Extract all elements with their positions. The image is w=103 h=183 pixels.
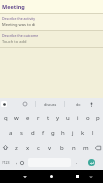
staticText: g (51, 129, 55, 137)
button[interactable]: Recent apps (69, 170, 85, 183)
button[interactable]: , (12, 155, 21, 170)
staticText: x (26, 144, 30, 152)
button[interactable]: c (33, 140, 44, 155)
button[interactable]: discuss (36, 98, 64, 110)
button[interactable]: a (5, 125, 16, 140)
button[interactable]: k (78, 125, 88, 140)
staticText: y (56, 114, 60, 122)
staticText: m (83, 144, 89, 152)
button[interactable]: Meeting (0, 0, 103, 13)
staticText: l (92, 129, 94, 137)
button[interactable]: Emoji (18, 155, 26, 170)
staticText: k (81, 129, 85, 137)
button[interactable]: Enter (83, 155, 100, 170)
staticText: Touch to add (2, 39, 27, 44)
staticText: b (60, 144, 64, 152)
button[interactable]: Backspace (92, 140, 103, 155)
button[interactable]: Describe the activity (0, 14, 103, 30)
staticText: u (66, 114, 70, 122)
staticText: j (72, 129, 74, 137)
button[interactable]: . (72, 155, 81, 170)
button[interactable]: w (11, 110, 22, 125)
button[interactable]: Hide keyboard (17, 170, 33, 183)
button[interactable]: Home (43, 170, 59, 183)
button[interactable]: i (73, 110, 83, 125)
staticText: d (31, 129, 35, 137)
button[interactable]: p (93, 110, 103, 125)
button[interactable]: q (0, 110, 11, 125)
button[interactable]: b (56, 140, 68, 155)
button[interactable]: v (44, 140, 56, 155)
staticText: z (15, 144, 18, 152)
staticText: f (42, 129, 45, 137)
staticText: r (37, 114, 40, 122)
staticText: p (96, 114, 100, 122)
button[interactable]: x (22, 140, 33, 155)
button[interactable]: g (48, 125, 58, 140)
staticText: discuss (44, 102, 57, 107)
button[interactable]: o (83, 110, 93, 125)
button[interactable]: d (27, 125, 38, 140)
button[interactable]: t (43, 110, 53, 125)
staticText: , (16, 159, 18, 166)
staticText: o (86, 114, 90, 122)
button[interactable]: h (58, 125, 68, 140)
staticText: q (4, 114, 8, 122)
staticText: w (14, 114, 19, 122)
staticText: c (37, 144, 40, 152)
button[interactable]: Describe the outcome (0, 31, 103, 47)
button[interactable]: y (53, 110, 63, 125)
button[interactable]: j (68, 125, 78, 140)
staticText: e (26, 114, 30, 122)
staticText: do (76, 102, 81, 107)
button[interactable]: f (38, 125, 48, 140)
staticText: Meeting was to di (2, 22, 36, 27)
button[interactable]: l (88, 125, 98, 140)
staticText: v (48, 144, 52, 152)
button[interactable]: n (68, 140, 80, 155)
button[interactable]: u (63, 110, 73, 125)
staticText: . (76, 159, 78, 166)
button[interactable]: e (22, 110, 33, 125)
button[interactable]: do (65, 98, 92, 110)
staticText: i (77, 114, 79, 122)
staticText: s (20, 129, 23, 137)
button[interactable]: r (33, 110, 43, 125)
staticText: Meeting (2, 3, 25, 10)
staticText: Describe the activity (2, 16, 36, 21)
button[interactable]: m (80, 140, 92, 155)
staticText: Describe the outcome (2, 33, 39, 38)
staticText: n (72, 144, 76, 152)
button[interactable]: Voice input (86, 98, 97, 110)
button[interactable]: Expand toolbar (0, 99, 8, 109)
button[interactable]: ?123 (0, 155, 12, 170)
button[interactable]: Clipboard (20, 99, 30, 109)
staticText: ?123 (2, 160, 10, 165)
staticText: t (47, 114, 50, 122)
staticText: a (9, 129, 13, 137)
button[interactable]: s (16, 125, 27, 140)
button[interactable]: z (11, 140, 22, 155)
button[interactable]: Shift (0, 140, 11, 155)
button[interactable]: More options (84, 170, 97, 183)
staticText: h (61, 129, 65, 137)
